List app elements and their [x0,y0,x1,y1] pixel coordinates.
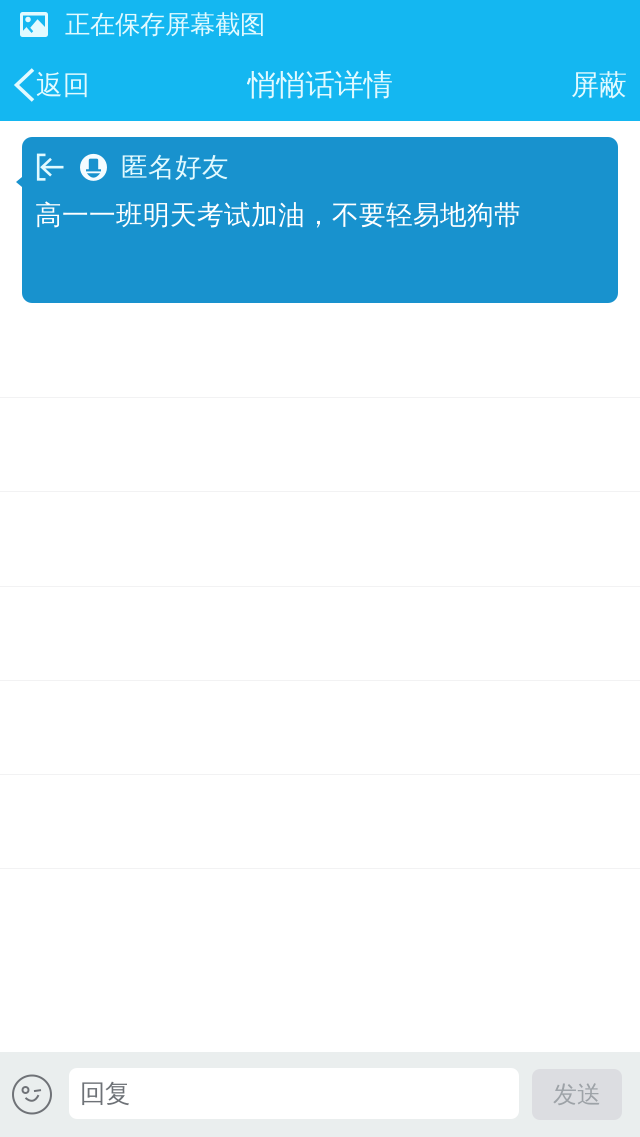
button[interactable]: 回复 [64,1068,519,1121]
button[interactable]: 发送 [532,1069,622,1120]
staticText: 屏蔽 [571,68,627,102]
staticText: 正在保存屏幕截图 [65,9,265,40]
button[interactable]: 表情 [0,1052,64,1137]
staticText: 回复 [80,1078,130,1109]
staticText: 返回 [36,69,90,101]
button[interactable]: 返回 [0,49,102,121]
button[interactable]: 屏蔽 [553,49,640,121]
staticText: 匿名好友 [121,151,229,184]
staticText: 悄悄话详情 [247,67,392,103]
staticText: 高一一班明天考试加油，不要轻易地狗带 [35,199,521,232]
staticText: 发送 [553,1080,601,1109]
